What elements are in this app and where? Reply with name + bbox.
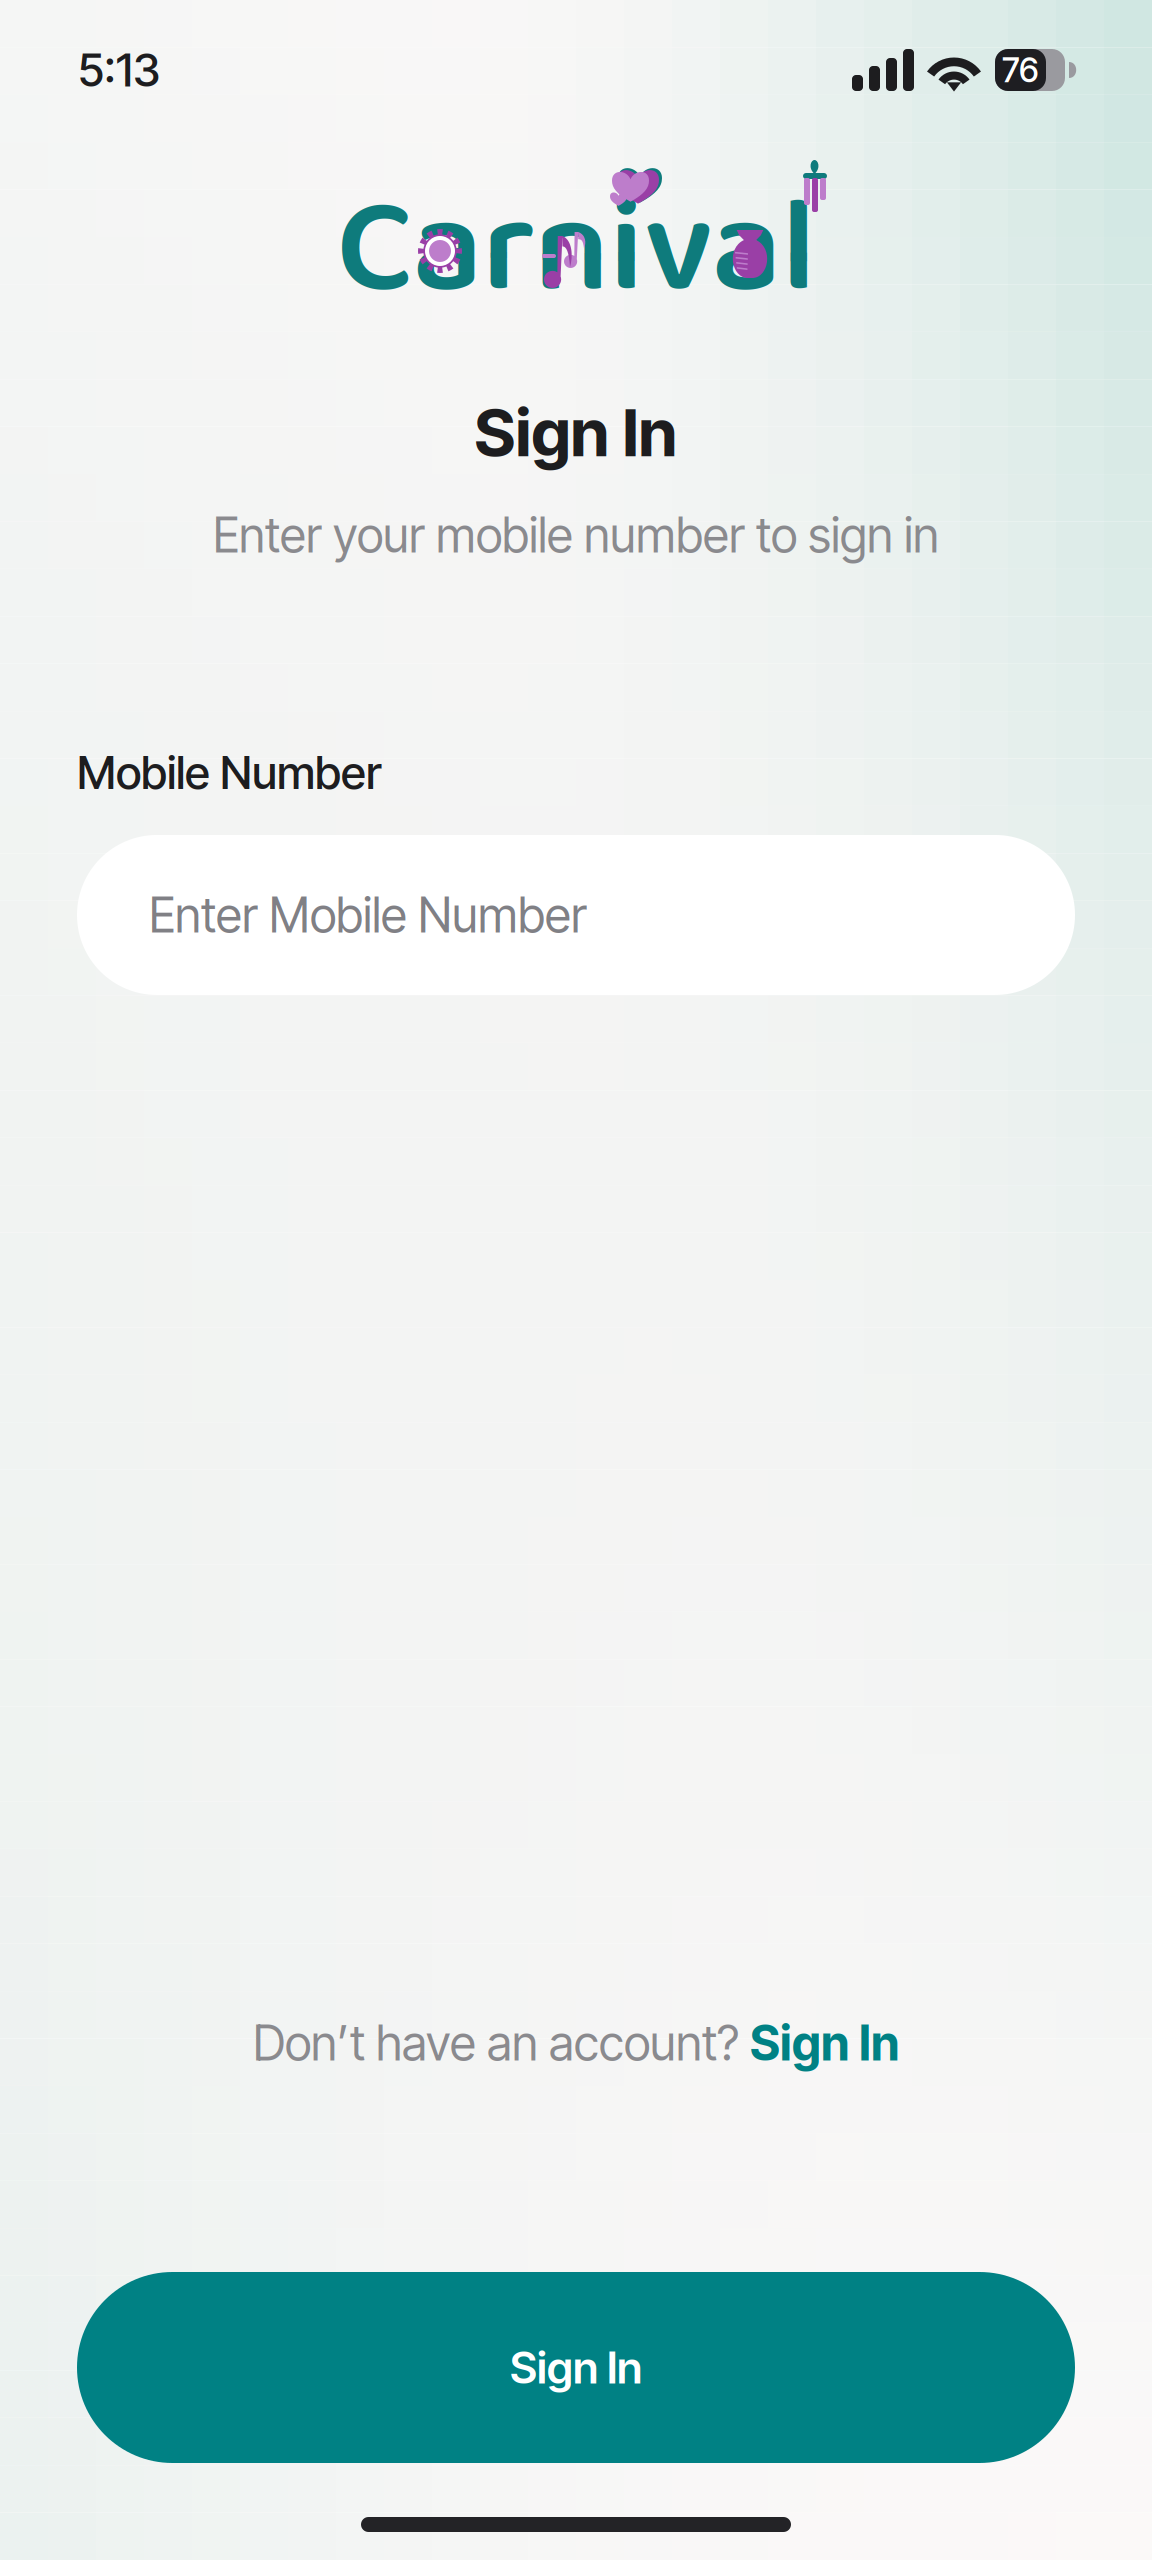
- button[interactable]: Don’t have an account?: [253, 1996, 899, 2090]
- button[interactable]: Sign In: [77, 2272, 1075, 2463]
- button[interactable]: Enter Mobile Number: [77, 835, 1075, 995]
- staticText: Sign In: [510, 2341, 642, 2394]
- staticText: Sign In: [750, 2014, 899, 2072]
- staticText: Carnival: [336, 144, 816, 358]
- staticText: Sign In: [474, 393, 677, 472]
- staticText: Enter your mobile number to sign in: [213, 506, 939, 564]
- staticText: Mobile Number: [77, 745, 382, 800]
- staticText: 5:13: [78, 43, 160, 97]
- staticText: Enter Mobile Number: [149, 886, 587, 944]
- staticText: Don’t have an account?: [253, 2014, 750, 2072]
- staticText: 76: [1002, 50, 1039, 90]
